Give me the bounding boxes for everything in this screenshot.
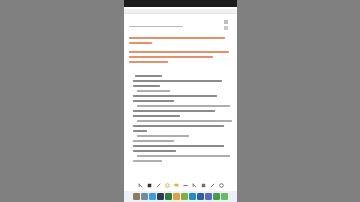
button[interactable]: Toolbar action	[200, 182, 207, 189]
button[interactable]: Taskbar app	[221, 193, 228, 200]
button[interactable]: Taskbar app	[141, 193, 148, 200]
button[interactable]: Toolbar action	[173, 182, 180, 189]
button[interactable]: Toolbar action	[182, 182, 189, 189]
button[interactable]: Taskbar app	[133, 193, 140, 200]
button[interactable]: Taskbar app	[205, 193, 212, 200]
button[interactable]: Taskbar app	[157, 193, 164, 200]
button[interactable]: Taskbar app	[213, 193, 220, 200]
button[interactable]: Taskbar app	[149, 193, 156, 200]
button[interactable]: Taskbar app	[173, 193, 180, 200]
button[interactable]: Toolbar action	[218, 182, 225, 189]
button[interactable]: Toolbar action	[209, 182, 216, 189]
button[interactable]: Toolbar action	[146, 182, 153, 189]
button[interactable]: Taskbar app	[197, 193, 204, 200]
button[interactable]: Toolbar action	[155, 182, 162, 189]
button[interactable]: Toolbar action	[164, 182, 171, 189]
button[interactable]: Toolbar action	[191, 182, 198, 189]
button[interactable]: Taskbar app	[165, 193, 172, 200]
button[interactable]: Taskbar app	[181, 193, 188, 200]
button[interactable]: Taskbar app	[189, 193, 196, 200]
button[interactable]: Toolbar action	[137, 182, 144, 189]
